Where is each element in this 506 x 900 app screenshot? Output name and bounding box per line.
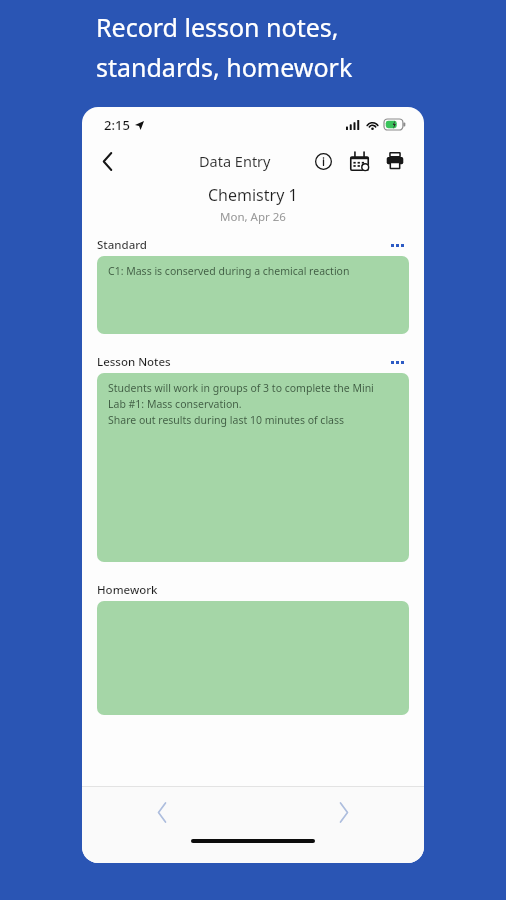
staticText: Lesson Notes bbox=[97, 354, 171, 370]
button[interactable]: Students will work in groups of 3 to com… bbox=[97, 373, 409, 562]
staticText: standards, homework bbox=[96, 50, 353, 84]
staticText: C1: Mass is conserved during a chemical … bbox=[108, 264, 350, 278]
staticText: Share out results during last 10 minutes… bbox=[108, 413, 345, 427]
staticText: Chemistry 1 bbox=[208, 184, 298, 206]
staticText: Lab #1: Mass conservation. bbox=[108, 397, 242, 411]
staticText: Students will work in groups of 3 to com… bbox=[108, 381, 374, 395]
button[interactable]: More options for Standard bbox=[389, 240, 406, 251]
staticText: Homework bbox=[97, 582, 158, 598]
button[interactable]: More options for Lesson Notes bbox=[389, 357, 406, 368]
button[interactable]: Previous bbox=[144, 794, 180, 830]
button[interactable]: Back bbox=[90, 144, 124, 178]
button[interactable]: Next bbox=[326, 794, 362, 830]
staticText: Record lesson notes, bbox=[96, 10, 339, 44]
staticText: 2:15 bbox=[104, 116, 130, 134]
staticText: Data Entry bbox=[199, 151, 271, 171]
button[interactable]: C1: Mass is conserved during a chemical … bbox=[97, 256, 409, 334]
button[interactable]: Information bbox=[308, 146, 338, 176]
staticText: Standard bbox=[97, 237, 147, 253]
button[interactable]: Print bbox=[380, 146, 410, 176]
button[interactable]: Calendar bbox=[344, 146, 374, 176]
staticText: Mon, Apr 26 bbox=[220, 209, 286, 225]
